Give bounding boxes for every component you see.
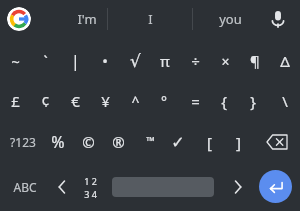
button[interactable]: % (43, 122, 73, 162)
staticText: ✓ (171, 133, 185, 152)
staticText: ¢ (41, 91, 50, 111)
staticText: ™ (146, 133, 155, 148)
button[interactable]: √ (120, 41, 150, 81)
button[interactable]: you (194, 0, 266, 38)
button[interactable]: ¥ (90, 81, 120, 121)
button[interactable]: ® (103, 122, 133, 162)
button[interactable]: Voice input (264, 5, 292, 33)
staticText: = (191, 91, 200, 111)
button[interactable]: Next (224, 169, 252, 205)
staticText: 1 2 (84, 175, 97, 187)
staticText: √ (130, 51, 141, 71)
staticText: • (102, 51, 108, 71)
staticText: } (250, 91, 256, 111)
staticText: ~ (11, 51, 20, 71)
staticText: Δ (280, 51, 290, 71)
button[interactable]: ¢ (30, 81, 60, 121)
button[interactable]: € (60, 81, 90, 121)
staticText: I (148, 10, 153, 28)
staticText: € (71, 91, 80, 111)
button[interactable]: ™ (135, 120, 165, 160)
staticText: ÷ (191, 51, 200, 71)
staticText: you (219, 10, 242, 28)
button[interactable]: Enter (259, 170, 292, 203)
staticText: ® (112, 132, 125, 152)
button[interactable]: Number pad (76, 169, 104, 205)
button[interactable]: } (238, 81, 268, 121)
button[interactable]: Backspace (258, 122, 296, 162)
staticText: \ (282, 91, 288, 111)
staticText: [ (207, 132, 212, 152)
button[interactable]: × (210, 41, 240, 81)
button[interactable]: ?123 (8, 122, 38, 162)
staticText: × (221, 52, 230, 71)
button[interactable]: [ (194, 122, 224, 162)
staticText: ` (43, 51, 48, 71)
button[interactable]: ABC (10, 167, 40, 207)
button[interactable]: • (90, 41, 120, 81)
button[interactable]: ÷ (180, 41, 210, 81)
staticText: I'm (77, 10, 97, 28)
button[interactable]: ] (223, 122, 253, 162)
staticText: ABC (13, 179, 37, 195)
staticText: £ (11, 91, 20, 111)
button[interactable]: © (73, 122, 103, 162)
staticText: % (51, 131, 65, 153)
button[interactable]: Δ (270, 41, 300, 81)
button[interactable]: ¶ (240, 41, 270, 81)
staticText: | (71, 50, 80, 72)
button[interactable]: Google (7, 7, 31, 31)
staticText: π (160, 51, 170, 71)
button[interactable]: ✓ (163, 122, 193, 162)
button[interactable]: ~ (0, 41, 30, 81)
button[interactable]: I'm (38, 0, 136, 38)
staticText: ¥ (101, 91, 110, 111)
staticText: ^ (131, 92, 140, 111)
staticText: © (82, 132, 95, 152)
button[interactable]: £ (0, 81, 30, 121)
button[interactable]: I (110, 0, 190, 38)
button[interactable]: \ (270, 81, 300, 121)
staticText: ?123 (10, 134, 36, 150)
staticText: ¶ (250, 51, 260, 71)
button[interactable]: = (180, 81, 210, 121)
staticText: { (221, 91, 227, 111)
button[interactable]: ° (149, 81, 179, 121)
button[interactable]: Previous (48, 169, 76, 205)
staticText: ° (161, 92, 167, 111)
staticText: ] (236, 132, 241, 152)
button[interactable]: | (60, 41, 90, 81)
staticText: 3 4 (84, 188, 97, 200)
button[interactable]: π (150, 41, 180, 81)
button[interactable]: ` (30, 41, 60, 81)
button[interactable]: { (209, 81, 239, 121)
button[interactable]: ^ (120, 81, 150, 121)
